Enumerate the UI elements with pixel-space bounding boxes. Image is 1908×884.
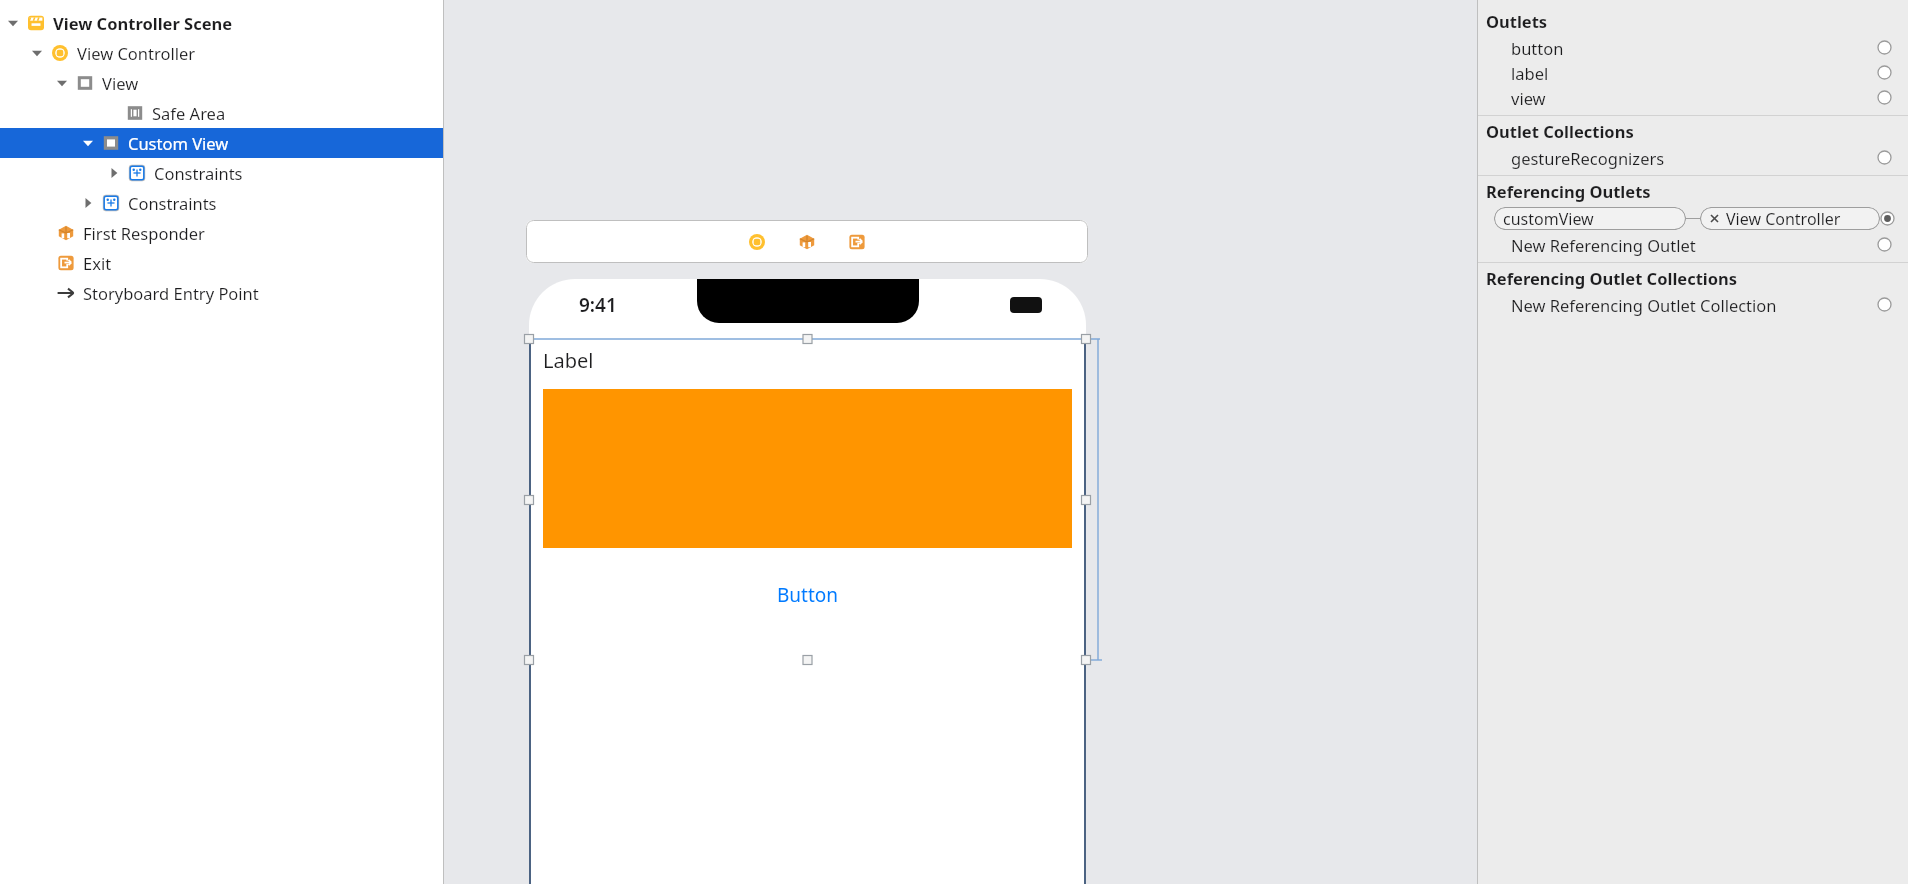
button[interactable]: View Controller (744, 229, 770, 255)
button[interactable]: label (1478, 60, 1908, 85)
staticText: New Referencing Outlet (1511, 234, 1696, 256)
button[interactable]: Storyboard Entry Point (0, 278, 443, 308)
button[interactable]: View Controller Scene (0, 8, 443, 38)
staticText: First Responder (83, 222, 205, 244)
staticText: gestureRecognizers (1511, 147, 1665, 169)
staticText: button (1511, 37, 1564, 59)
staticText: View Controller (1726, 208, 1841, 230)
button[interactable]: First Responder (0, 218, 443, 248)
staticText: View (102, 72, 139, 94)
staticText: Safe Area (152, 102, 226, 124)
staticText: Storyboard Entry Point (83, 282, 259, 304)
button[interactable]: customView (1494, 207, 1686, 230)
button[interactable]: View Controller (0, 38, 443, 68)
staticText: New Referencing Outlet Collection (1511, 294, 1777, 316)
staticText: Constraints (128, 192, 217, 214)
button[interactable]: New Referencing Outlet (1478, 232, 1908, 257)
button[interactable]: Button (529, 578, 1086, 612)
button[interactable]: view (1478, 85, 1908, 110)
staticText: Label (543, 347, 594, 374)
staticText: customView (1503, 208, 1594, 230)
staticText: 9:41 (579, 292, 617, 318)
button[interactable]: First Responder (794, 229, 820, 255)
button[interactable]: Constraints (0, 158, 443, 188)
staticText: label (1511, 62, 1549, 84)
button[interactable]: button (1478, 35, 1908, 60)
staticText: Custom View (128, 132, 229, 154)
button[interactable]: View Controller (1700, 207, 1880, 230)
staticText: Outlets (1486, 10, 1548, 32)
button[interactable]: Safe Area (0, 98, 443, 128)
button[interactable]: View (0, 68, 443, 98)
staticText: Constraints (154, 162, 243, 184)
button[interactable]: Exit (0, 248, 443, 278)
button[interactable]: Constraints (0, 188, 443, 218)
staticText: Exit (83, 252, 112, 274)
button[interactable]: Custom View (0, 128, 443, 158)
staticText: Referencing Outlet Collections (1486, 267, 1738, 289)
staticText: View Controller Scene (53, 12, 233, 34)
staticText: Outlet Collections (1486, 120, 1634, 142)
button[interactable]: New Referencing Outlet Collection (1478, 292, 1908, 317)
staticText: Button (777, 582, 839, 608)
button[interactable]: gestureRecognizers (1478, 145, 1908, 170)
staticText: View Controller (77, 42, 196, 64)
staticText: Referencing Outlets (1486, 180, 1651, 202)
button[interactable]: Exit (844, 229, 870, 255)
staticText: view (1511, 87, 1546, 109)
